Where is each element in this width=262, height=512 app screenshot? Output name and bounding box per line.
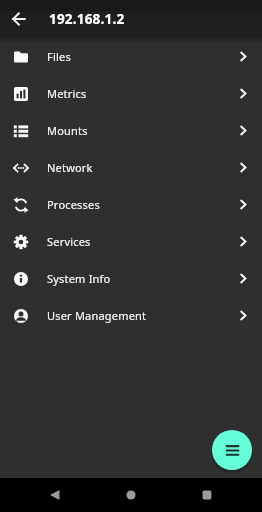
staticText: Files [47, 49, 71, 64]
button[interactable]: Metrics [0, 75, 262, 112]
button[interactable]: User Management [0, 297, 262, 334]
staticText: User Management [47, 308, 147, 323]
staticText: Metrics [47, 86, 87, 101]
button[interactable]: Network [0, 149, 262, 186]
staticText: Network [47, 160, 93, 175]
staticText: Services [47, 234, 91, 249]
button[interactable] [40, 478, 70, 512]
button[interactable]: Services [0, 223, 262, 260]
button[interactable]: Mounts [0, 112, 262, 149]
staticText: System Info [47, 271, 111, 286]
button[interactable]: Files [0, 38, 262, 75]
button[interactable] [0, 0, 38, 38]
button[interactable] [212, 430, 252, 470]
staticText: Mounts [47, 123, 88, 138]
staticText: Processes [47, 197, 100, 212]
button[interactable] [116, 478, 146, 512]
button[interactable]: Processes [0, 186, 262, 223]
staticText: 192.168.1.2 [49, 10, 125, 28]
button[interactable] [192, 478, 222, 512]
button[interactable]: System Info [0, 260, 262, 297]
